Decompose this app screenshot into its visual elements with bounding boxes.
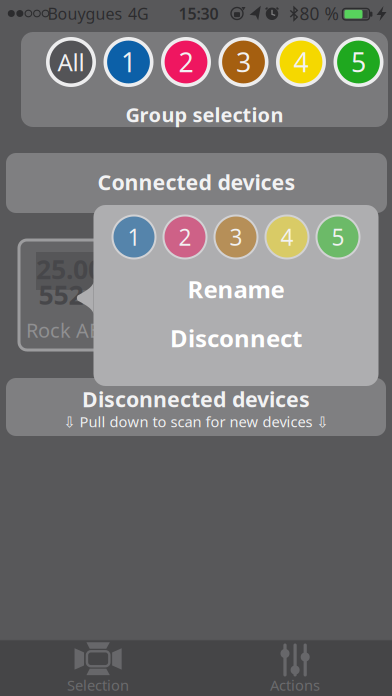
button[interactable]: Rename xyxy=(101,269,371,309)
staticText: Rename xyxy=(187,273,284,305)
staticText: 80 % xyxy=(299,2,338,25)
staticText: 4G xyxy=(128,3,149,24)
button[interactable]: Group 4 xyxy=(276,37,326,87)
button[interactable]: Group 4 xyxy=(264,214,309,259)
button[interactable]: Actions tab xyxy=(234,640,354,696)
button[interactable]: Selection tab xyxy=(38,640,158,696)
staticText: 5 xyxy=(331,222,344,252)
button[interactable]: Rock AERO device xyxy=(19,240,159,350)
staticText: Connected devices xyxy=(97,168,295,196)
staticText: 552 xyxy=(38,277,83,312)
button[interactable]: Group All xyxy=(46,37,96,87)
button[interactable]: Group 5 xyxy=(315,214,360,259)
staticText: Disconnected devices xyxy=(82,385,310,413)
staticText: 25.00 xyxy=(36,251,103,287)
staticText: 4 xyxy=(280,222,293,252)
staticText: 2 xyxy=(178,222,191,252)
staticText: ⇩ Pull down to scan for new devices ⇩ xyxy=(63,412,328,431)
staticText: Rock AERO xyxy=(26,317,128,343)
button[interactable]: Group 3 xyxy=(218,37,268,87)
button[interactable]: Group 2 xyxy=(162,214,207,259)
button[interactable]: Group 2 xyxy=(161,37,211,87)
staticText: 4 xyxy=(293,44,308,80)
button[interactable]: Group 5 xyxy=(333,37,383,87)
staticText: Disconnect xyxy=(170,322,302,354)
button[interactable]: Group 1 xyxy=(111,214,156,259)
staticText: Group selection xyxy=(125,101,283,128)
staticText: Actions xyxy=(270,675,320,695)
button[interactable]: Group 1 xyxy=(103,37,153,87)
staticText: 1 xyxy=(121,44,136,80)
button[interactable]: Group 3 xyxy=(213,214,258,259)
staticText: 3 xyxy=(229,222,242,252)
staticText: 5 xyxy=(351,44,366,80)
staticText: 2 xyxy=(178,44,193,80)
staticText: 15:30 xyxy=(178,3,218,24)
staticText: All xyxy=(57,46,84,78)
staticText: 3 xyxy=(236,44,251,80)
staticText: 1 xyxy=(127,222,140,252)
staticText: Selection xyxy=(67,675,129,695)
staticText: Bouygues xyxy=(47,3,122,24)
button[interactable]: Disconnect xyxy=(101,318,371,358)
